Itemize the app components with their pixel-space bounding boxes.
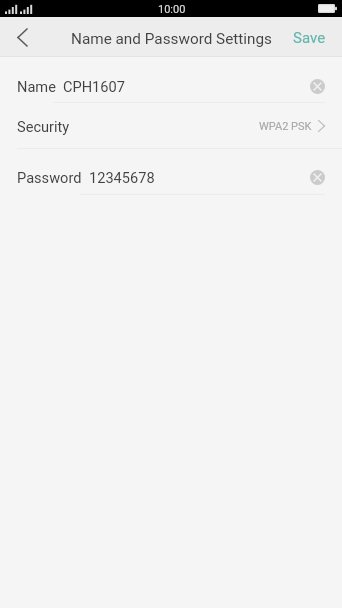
staticText: Security <box>17 118 70 135</box>
button[interactable]: Name <box>0 70 342 103</box>
staticText: WPA2 PSK <box>259 120 312 133</box>
staticText: CPH1607 <box>63 78 125 95</box>
staticText: Name <box>17 78 56 95</box>
staticText: Password <box>17 169 82 186</box>
button[interactable]: Clear text <box>310 79 325 94</box>
button[interactable]: Password <box>0 161 342 195</box>
button[interactable]: Save <box>279 17 342 57</box>
button[interactable]: Clear text <box>310 170 325 185</box>
button[interactable]: Back <box>0 17 44 57</box>
staticText: 12345678 <box>89 169 155 186</box>
button[interactable]: Security <box>0 104 342 149</box>
staticText: 10:00 <box>158 3 186 16</box>
staticText: Save <box>293 29 326 47</box>
staticText: Name and Password Settings <box>71 30 272 48</box>
